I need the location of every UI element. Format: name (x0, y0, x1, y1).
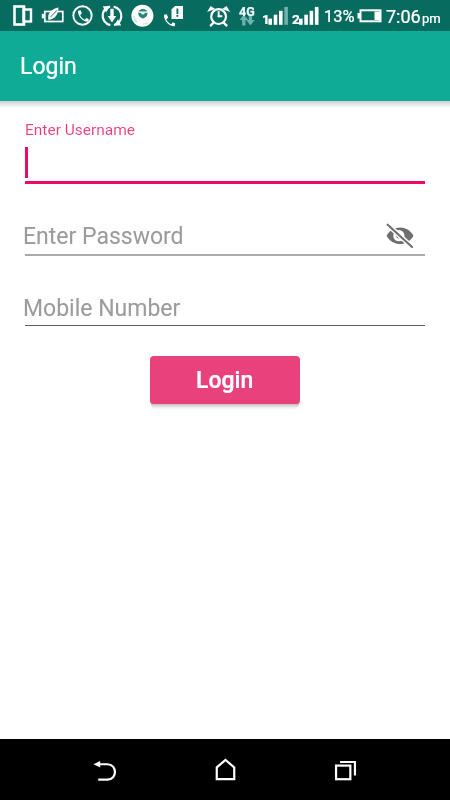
button[interactable]: Enter Username (25, 121, 425, 139)
staticText: Login (196, 367, 254, 394)
button[interactable]: Toggle password visibility (386, 223, 414, 247)
staticText: Mobile Number (23, 295, 181, 322)
staticText: Enter Username (25, 121, 136, 139)
staticText: 1 (262, 11, 270, 27)
button[interactable]: Mobile Number (23, 295, 425, 322)
button[interactable]: Recents (315, 739, 375, 800)
staticText: pm (422, 11, 441, 26)
button[interactable]: Login (150, 356, 300, 404)
staticText: 2 (292, 11, 300, 27)
button[interactable]: Enter Password (23, 223, 425, 250)
button[interactable]: Back (75, 739, 135, 800)
button[interactable]: Home (195, 739, 255, 800)
staticText: 4G (239, 4, 255, 19)
staticText: 13% (324, 7, 355, 26)
staticText: 7:06 (386, 6, 421, 27)
staticText: Login (20, 53, 77, 80)
staticText: Enter Password (23, 223, 184, 250)
